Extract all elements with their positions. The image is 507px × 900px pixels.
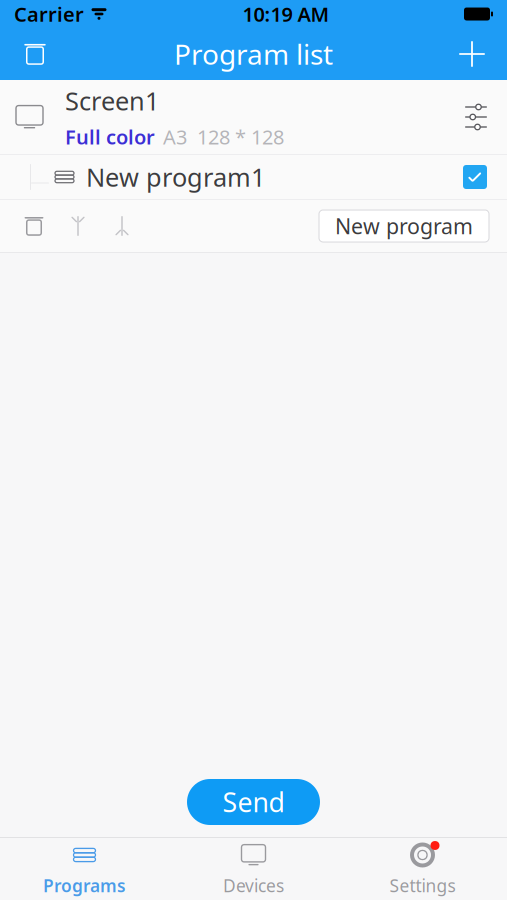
button[interactable]: Move down: [100, 204, 144, 248]
button[interactable]: Screen1: [0, 80, 507, 154]
button[interactable]: Delete selected: [12, 204, 56, 248]
staticText: New program: [335, 212, 473, 240]
staticText: Programs: [43, 874, 126, 897]
button[interactable]: Move up: [56, 204, 100, 248]
button[interactable]: Delete: [8, 28, 62, 80]
staticText: Devices: [223, 874, 284, 897]
staticText: 10:19 AM: [242, 1, 329, 27]
staticText: Settings: [389, 874, 455, 897]
button[interactable]: New program1: [0, 155, 507, 199]
button[interactable]: New program: [319, 210, 489, 242]
staticText: A3 128 * 128: [163, 123, 284, 150]
button[interactable]: Programs: [0, 838, 169, 900]
staticText: Send: [222, 784, 284, 820]
staticText: Screen1: [65, 84, 159, 117]
button[interactable]: Send: [187, 779, 320, 825]
staticText: Program list: [174, 35, 333, 73]
staticText: Full color: [65, 123, 155, 150]
button[interactable]: Settings: [338, 838, 507, 900]
staticText: New program1: [86, 160, 265, 194]
button[interactable]: Add program: [445, 28, 499, 80]
button[interactable]: Devices: [169, 838, 338, 900]
staticText: Carrier: [14, 1, 84, 27]
